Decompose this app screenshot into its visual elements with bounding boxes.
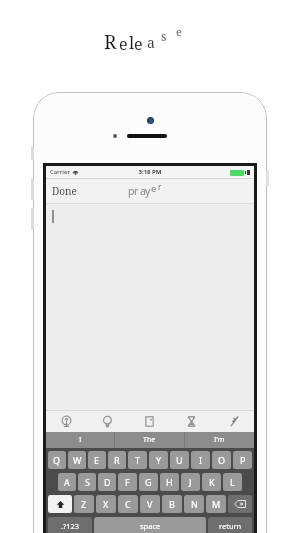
button[interactable]: Send	[212, 411, 254, 432]
button[interactable]: U	[170, 451, 189, 469]
button[interactable]: V	[140, 495, 160, 513]
staticText: D	[104, 476, 111, 488]
staticText: Q	[53, 454, 61, 466]
staticText: 3:18 PM	[46, 168, 254, 176]
staticText: e	[119, 33, 128, 55]
button[interactable]: I	[191, 451, 210, 469]
button[interactable]: Backspace	[228, 495, 252, 513]
staticText: W	[73, 454, 82, 466]
staticText: a	[140, 184, 146, 198]
button[interactable]: Q	[48, 451, 66, 469]
staticText: r	[134, 184, 139, 198]
staticText: S	[85, 476, 90, 488]
staticText: X	[103, 498, 109, 510]
staticText: C	[125, 498, 131, 510]
staticText: space	[140, 521, 161, 531]
button[interactable]: space	[94, 517, 206, 533]
staticText: return	[219, 521, 242, 531]
staticText: e	[151, 182, 157, 195]
staticText: e	[176, 24, 182, 39]
button[interactable]: O	[212, 451, 231, 469]
staticText: F	[125, 476, 130, 488]
button[interactable]: The	[115, 432, 184, 448]
staticText: M	[212, 498, 221, 510]
staticText: Z	[81, 498, 87, 510]
staticText: Y	[156, 454, 162, 466]
button[interactable]: H	[160, 473, 179, 491]
button[interactable]: Insert	[46, 411, 87, 432]
staticText: K	[209, 476, 215, 488]
button[interactable]: Timer	[170, 411, 212, 432]
button[interactable]: X	[96, 495, 116, 513]
button[interactable]: Shift	[48, 495, 72, 513]
button[interactable]: L	[223, 473, 242, 491]
button[interactable]: Y	[149, 451, 168, 469]
staticText: R	[104, 29, 117, 55]
staticText: N	[191, 498, 198, 510]
button[interactable]: A	[58, 473, 76, 491]
staticText: a	[147, 33, 155, 52]
staticText: P	[240, 454, 246, 466]
button[interactable]: Idea	[87, 411, 128, 432]
button[interactable]: N	[184, 495, 204, 513]
button[interactable]: .?123	[48, 517, 92, 533]
staticText: L	[230, 476, 235, 488]
button[interactable]: Card	[128, 411, 170, 432]
staticText: E	[94, 454, 100, 466]
staticText: V	[147, 498, 153, 510]
button[interactable]: E	[88, 451, 106, 469]
staticText: y	[145, 184, 151, 198]
staticText: l	[129, 31, 135, 54]
button[interactable]: B	[162, 495, 182, 513]
staticText: I	[79, 435, 82, 445]
button[interactable]: R	[108, 451, 126, 469]
staticText: .?123	[61, 521, 80, 531]
button[interactable]: K	[202, 473, 221, 491]
button[interactable]: T	[128, 451, 147, 469]
staticText: A	[64, 476, 70, 488]
staticText: s	[161, 28, 167, 44]
button[interactable]: P	[233, 451, 252, 469]
staticText: The	[143, 435, 156, 445]
button[interactable]: S	[78, 473, 96, 491]
button[interactable]: Z	[74, 495, 94, 513]
button[interactable]: return	[208, 517, 252, 533]
button[interactable]: I	[46, 432, 114, 448]
button[interactable]: Done	[52, 184, 77, 198]
staticText: r	[158, 181, 162, 192]
staticText: T	[135, 454, 141, 466]
staticText: Done	[52, 184, 77, 198]
staticText: O	[218, 454, 226, 466]
button[interactable]: F	[118, 473, 137, 491]
staticText: I'm	[214, 435, 225, 445]
staticText: p	[128, 184, 135, 198]
staticText: R	[114, 454, 120, 466]
button[interactable]: G	[139, 473, 158, 491]
staticText: H	[166, 476, 173, 488]
staticText: G	[145, 476, 152, 488]
button[interactable]: C	[118, 495, 138, 513]
staticText: Carrier	[50, 168, 70, 176]
staticText: U	[176, 454, 183, 466]
staticText: e	[134, 33, 143, 55]
button[interactable]: M	[206, 495, 226, 513]
staticText: B	[169, 498, 175, 510]
button[interactable]: I'm	[185, 432, 254, 448]
staticText: J	[189, 476, 192, 488]
button[interactable]: D	[98, 473, 116, 491]
staticText: I	[199, 454, 203, 466]
button[interactable]: J	[181, 473, 200, 491]
button[interactable]: W	[68, 451, 86, 469]
